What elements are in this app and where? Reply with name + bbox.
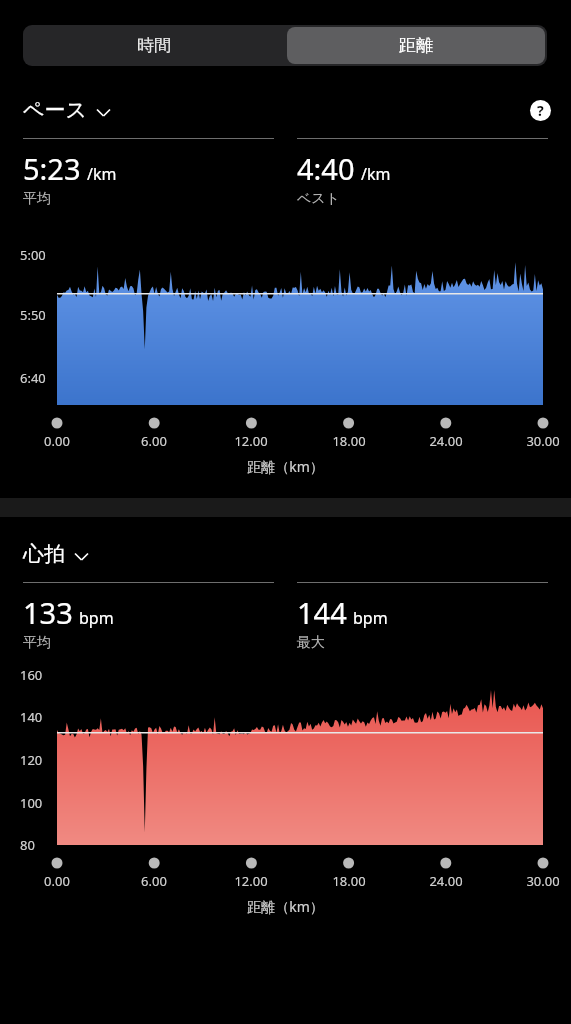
staticText: 144: [297, 593, 347, 632]
staticText: /km: [361, 163, 391, 185]
staticText: 平均: [23, 634, 51, 652]
button[interactable]: 5:23: [23, 138, 274, 208]
staticText: 0.00: [22, 872, 92, 890]
button[interactable]: ペース: [0, 93, 134, 127]
staticText: 時間: [137, 35, 171, 56]
button[interactable]: Help: [523, 93, 557, 127]
staticText: 160: [20, 666, 43, 684]
staticText: ペース: [23, 97, 87, 123]
staticText: 80: [20, 836, 35, 854]
staticText: 6:40: [20, 369, 46, 387]
staticText: 133: [23, 593, 73, 632]
staticText: 平均: [23, 190, 51, 208]
staticText: bpm: [79, 607, 114, 629]
button[interactable]: 距離: [287, 27, 545, 64]
staticText: 距離（km）: [0, 457, 571, 476]
staticText: 12.00: [216, 432, 286, 450]
staticText: 0.00: [22, 432, 92, 450]
staticText: 18.00: [314, 432, 384, 450]
staticText: 6.00: [119, 432, 189, 450]
staticText: 最大: [297, 634, 325, 652]
staticText: 6.00: [119, 872, 189, 890]
staticText: ベスト: [297, 190, 340, 208]
staticText: 距離: [399, 35, 433, 56]
button[interactable]: 133: [23, 582, 274, 652]
staticText: bpm: [353, 607, 388, 629]
staticText: 5:00: [20, 246, 46, 264]
staticText: 4:40: [297, 149, 355, 188]
staticText: 5:50: [20, 306, 46, 324]
staticText: /km: [87, 163, 117, 185]
button[interactable]: 時間: [23, 25, 285, 66]
staticText: 12.00: [216, 872, 286, 890]
staticText: 24.00: [411, 872, 481, 890]
button[interactable]: 144: [297, 582, 548, 652]
staticText: 24.00: [411, 432, 481, 450]
staticText: 120: [20, 751, 43, 769]
staticText: 30.00: [508, 432, 571, 450]
staticText: 距離（km）: [0, 897, 571, 916]
staticText: 18.00: [314, 872, 384, 890]
staticText: 30.00: [508, 872, 571, 890]
staticText: ?: [537, 101, 544, 120]
staticText: 5:23: [23, 149, 81, 188]
button[interactable]: 心拍: [0, 537, 112, 571]
button[interactable]: 4:40: [297, 138, 548, 208]
staticText: 140: [20, 708, 43, 726]
staticText: 100: [20, 794, 43, 812]
staticText: 心拍: [23, 541, 65, 567]
